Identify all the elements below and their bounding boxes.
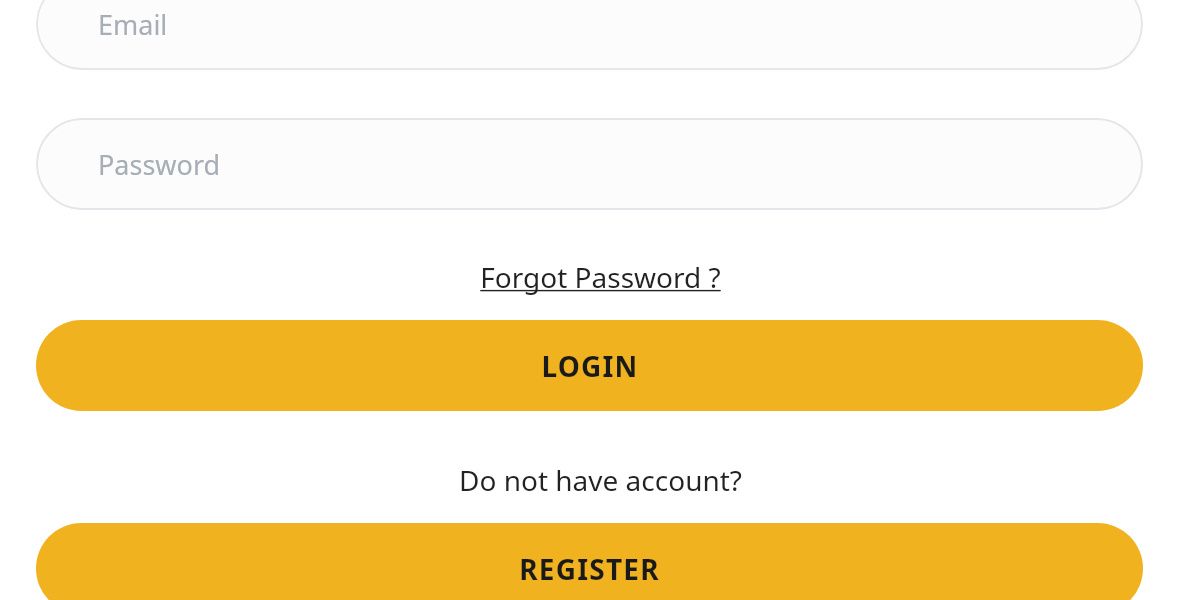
staticText: Do not have account? [459, 461, 742, 499]
button[interactable]: Email [36, 0, 1143, 70]
button[interactable]: Forgot Password ? [474, 256, 727, 298]
button[interactable]: Password [36, 118, 1143, 210]
staticText: LOGIN [541, 347, 639, 385]
staticText: Email [98, 6, 168, 43]
button[interactable]: LOGIN [36, 320, 1143, 411]
staticText: REGISTER [519, 550, 660, 588]
button[interactable]: REGISTER [36, 523, 1143, 600]
staticText: Password [98, 146, 221, 183]
staticText: Forgot Password ? [480, 258, 721, 296]
